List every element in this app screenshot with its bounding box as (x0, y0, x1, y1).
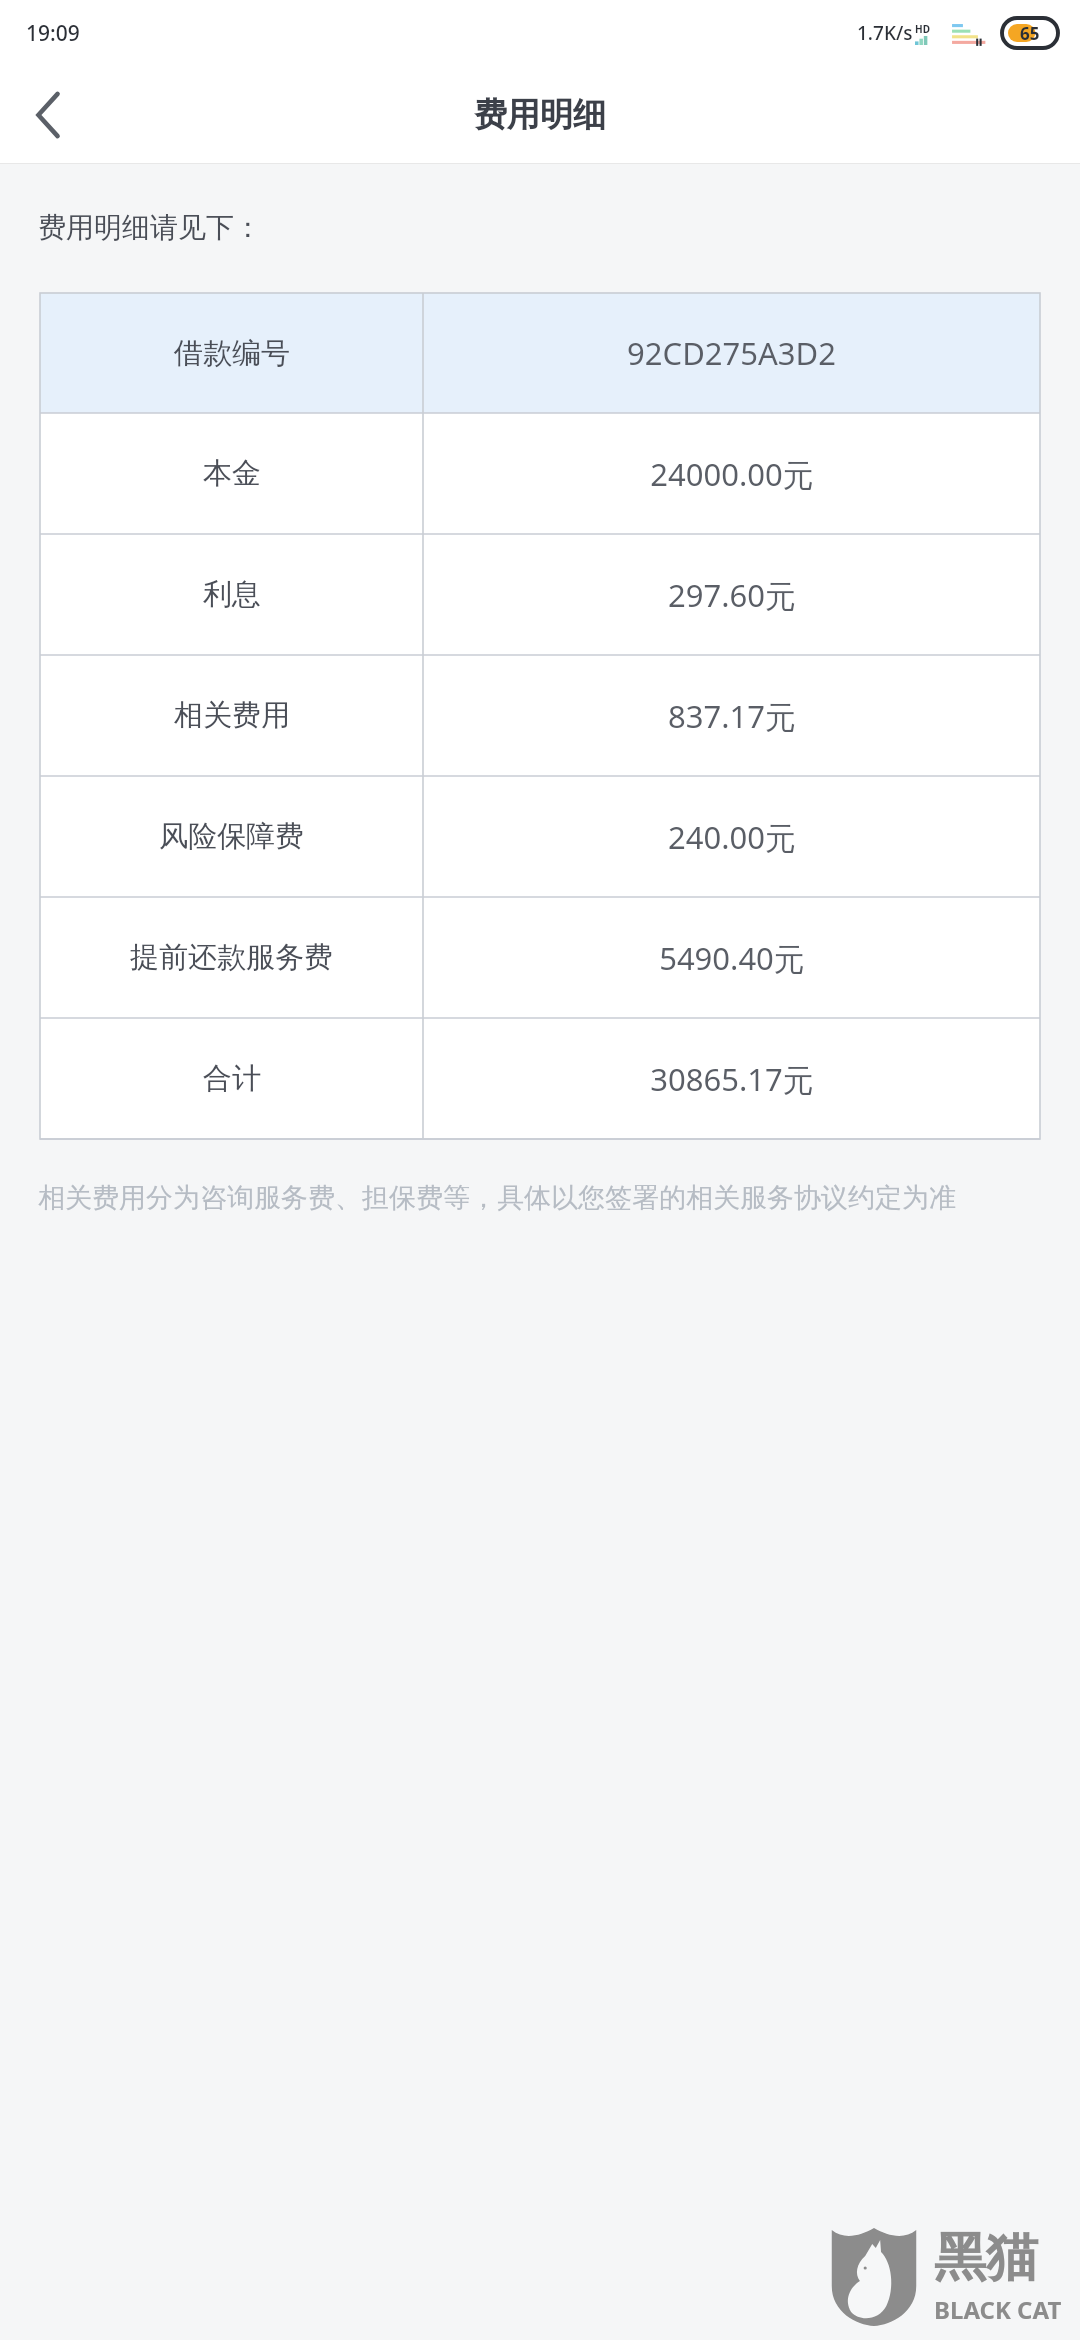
staticText: 30865.17元 (650, 1058, 814, 1100)
staticText: 费用明细请见下： (38, 210, 262, 245)
staticText: 风险保障费 (159, 818, 304, 855)
staticText: 提前还款服务费 (130, 939, 333, 976)
staticText: 费用明细 (474, 94, 606, 136)
staticText: 借款编号 (174, 335, 290, 372)
staticText: 本金 (203, 455, 261, 492)
staticText: 合计 (203, 1060, 261, 1097)
staticText: BLACK CAT (934, 2293, 1062, 2326)
staticText: 24000.00元 (650, 453, 814, 495)
staticText: 黑猫 (934, 2225, 1038, 2291)
staticText: 相关费用分为咨询服务费、担保费等，具体以您签署的相关服务协议约定为准 (38, 1181, 956, 1215)
staticText: 65 (1020, 22, 1040, 45)
staticText: 5490.40元 (659, 937, 805, 979)
staticText: 92CD275A3D2 (627, 332, 836, 374)
staticText: HD (915, 22, 930, 36)
staticText: 297.60元 (668, 574, 796, 616)
staticText: 相关费用 (174, 697, 290, 734)
staticText: 837.17元 (668, 695, 796, 737)
staticText: 19:09 (26, 19, 80, 48)
staticText: 240.00元 (668, 816, 796, 858)
staticText: 利息 (203, 576, 261, 613)
button[interactable]: Back (0, 67, 96, 163)
staticText: 1.7K/s (857, 20, 913, 46)
